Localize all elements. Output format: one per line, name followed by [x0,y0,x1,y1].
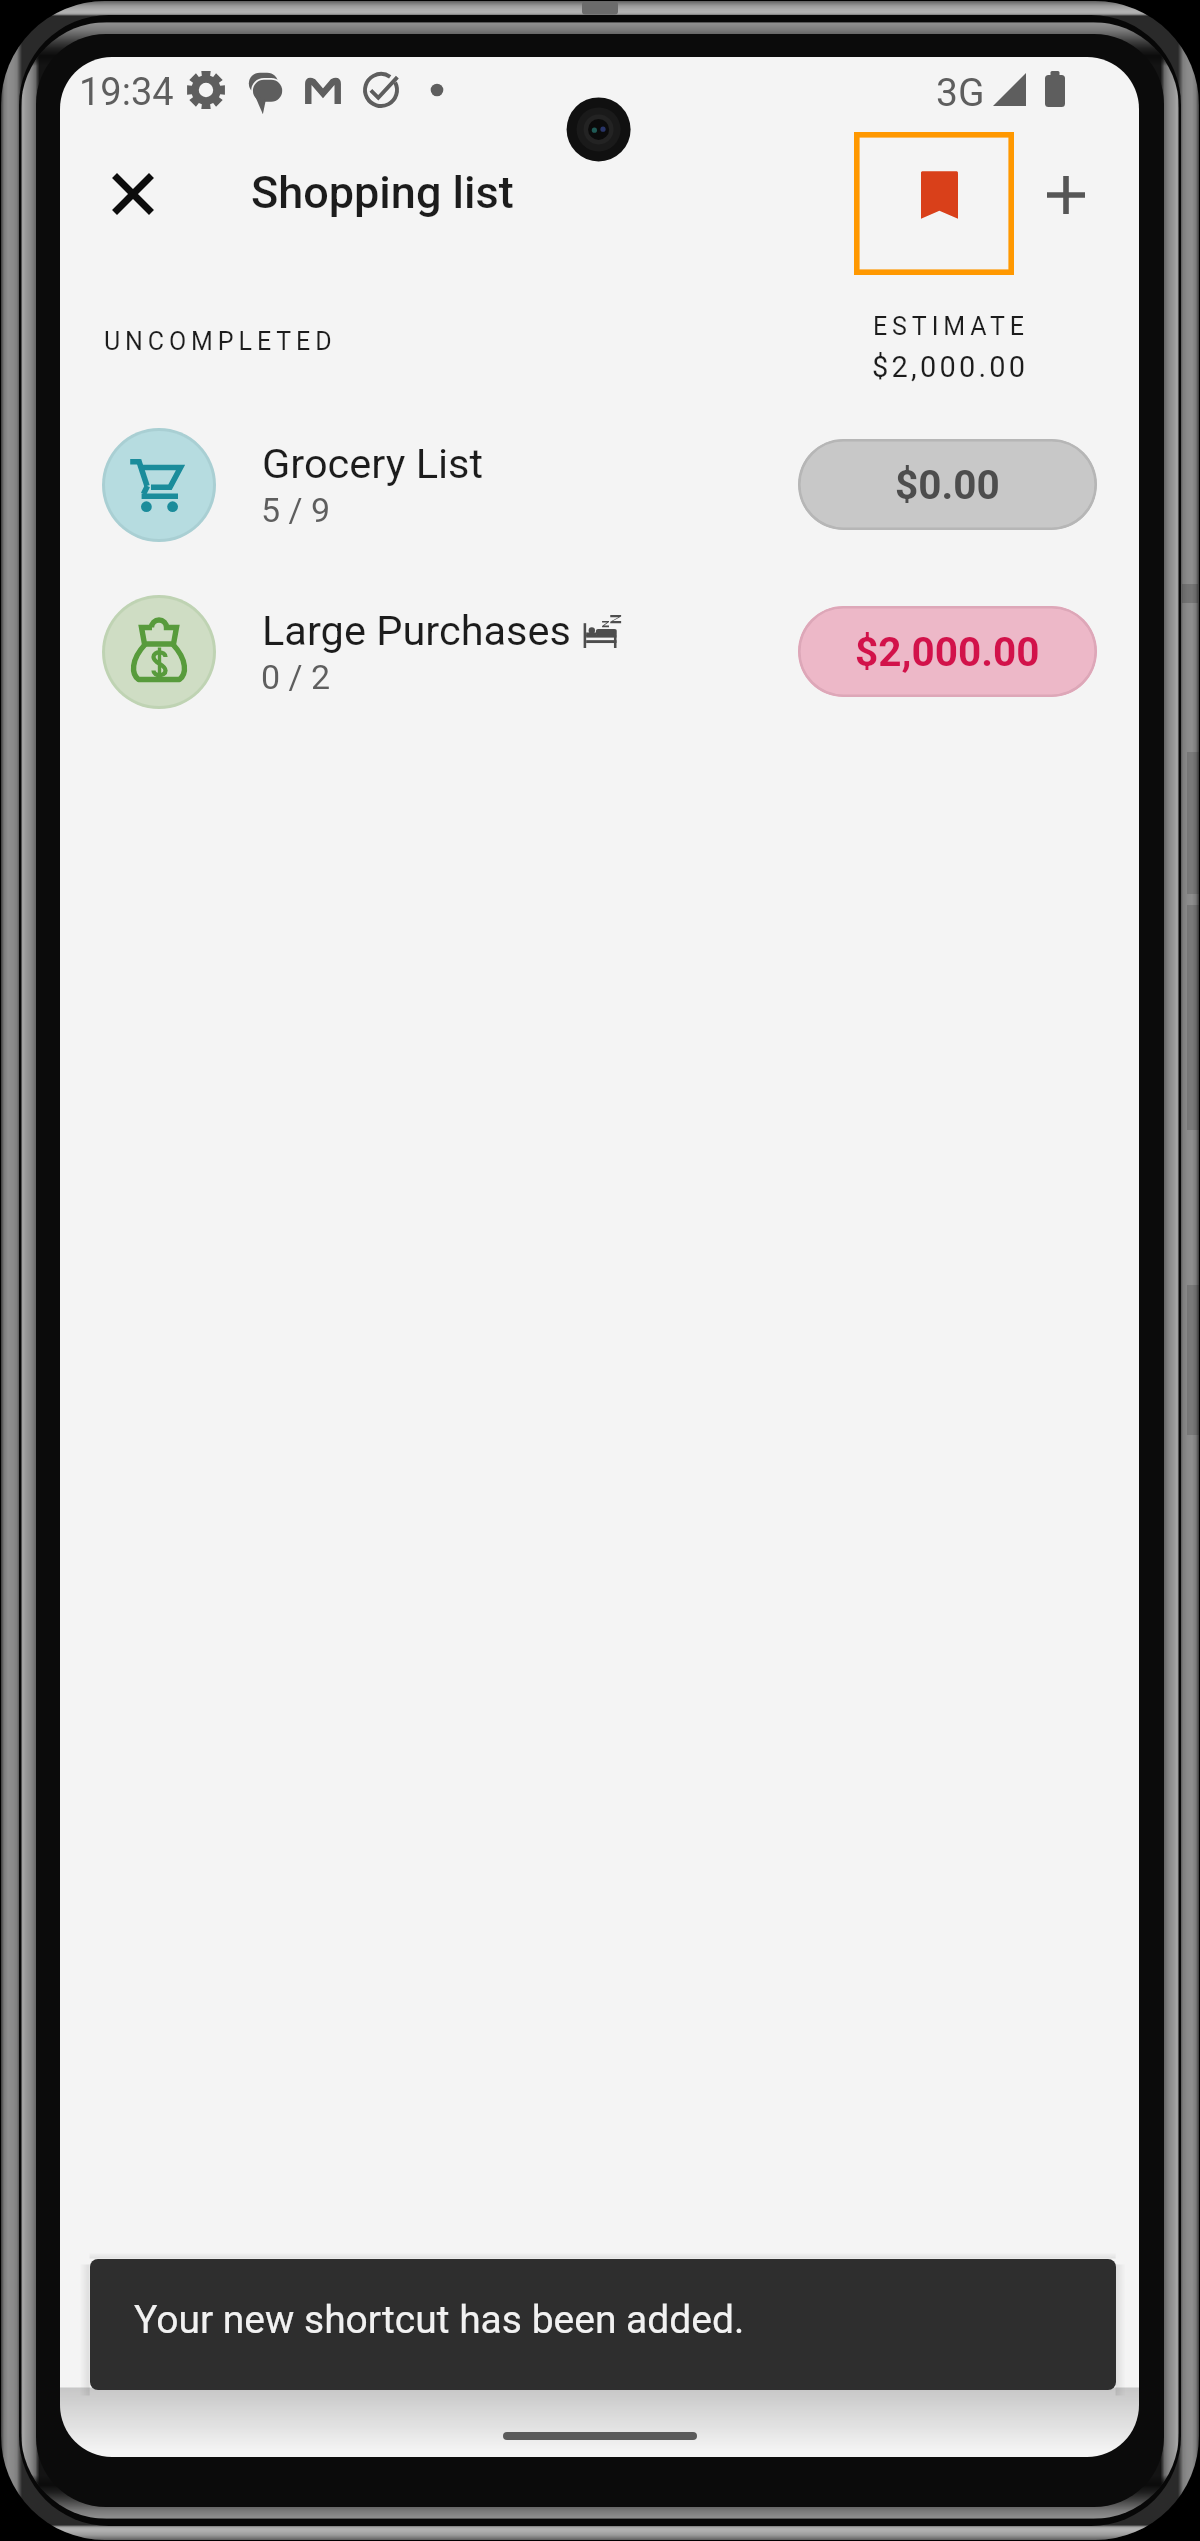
staticText: Your new shortcut has been added. [134,2297,745,2343]
staticText: 3G [936,70,985,116]
staticText: $2,000.00 [872,350,1029,384]
button[interactable]: Close [93,154,173,234]
staticText: ESTIMATE [873,312,1029,341]
staticText: $0.00 [895,461,1000,508]
button[interactable]: Your new shortcut has been added. [90,2259,1116,2390]
staticText: UNCOMPLETED [104,327,337,356]
staticText: Grocery List [262,439,484,488]
button[interactable]: Large Purchases [60,568,1139,736]
button[interactable]: $2,000.00 [798,606,1097,697]
button[interactable]: $0.00 [798,439,1097,530]
staticText: 19:34 [79,70,174,115]
staticText: 0 / 2 [261,657,331,697]
staticText: Shopping list [251,166,514,219]
button[interactable]: Grocery List [60,401,1139,569]
staticText: Large Purchases [262,606,571,655]
staticText: $2,000.00 [855,628,1040,675]
button[interactable]: Bookmark [854,132,1014,275]
staticText: 5 / 9 [261,490,331,530]
button[interactable]: Add [1026,155,1106,235]
